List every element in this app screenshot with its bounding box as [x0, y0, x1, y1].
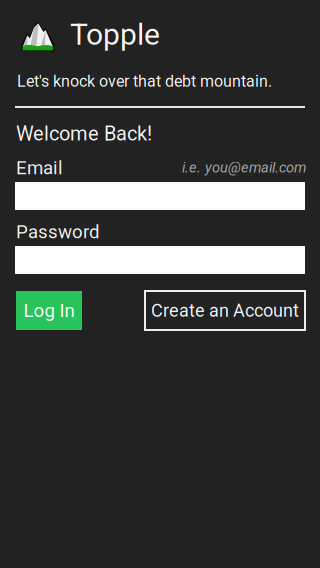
staticText: Welcome Back!: [16, 122, 152, 145]
staticText: Topple: [70, 17, 160, 52]
staticText: Password: [16, 221, 100, 243]
staticText: Create an Account: [151, 300, 299, 321]
button[interactable]: Create an Account: [145, 291, 305, 330]
staticText: Let's knock over that debt mountain.: [17, 72, 272, 91]
button[interactable]: Log In: [16, 291, 82, 330]
staticText: Email: [16, 157, 63, 179]
staticText: i.e. you@email.com: [182, 159, 306, 176]
staticText: Log In: [23, 300, 74, 321]
